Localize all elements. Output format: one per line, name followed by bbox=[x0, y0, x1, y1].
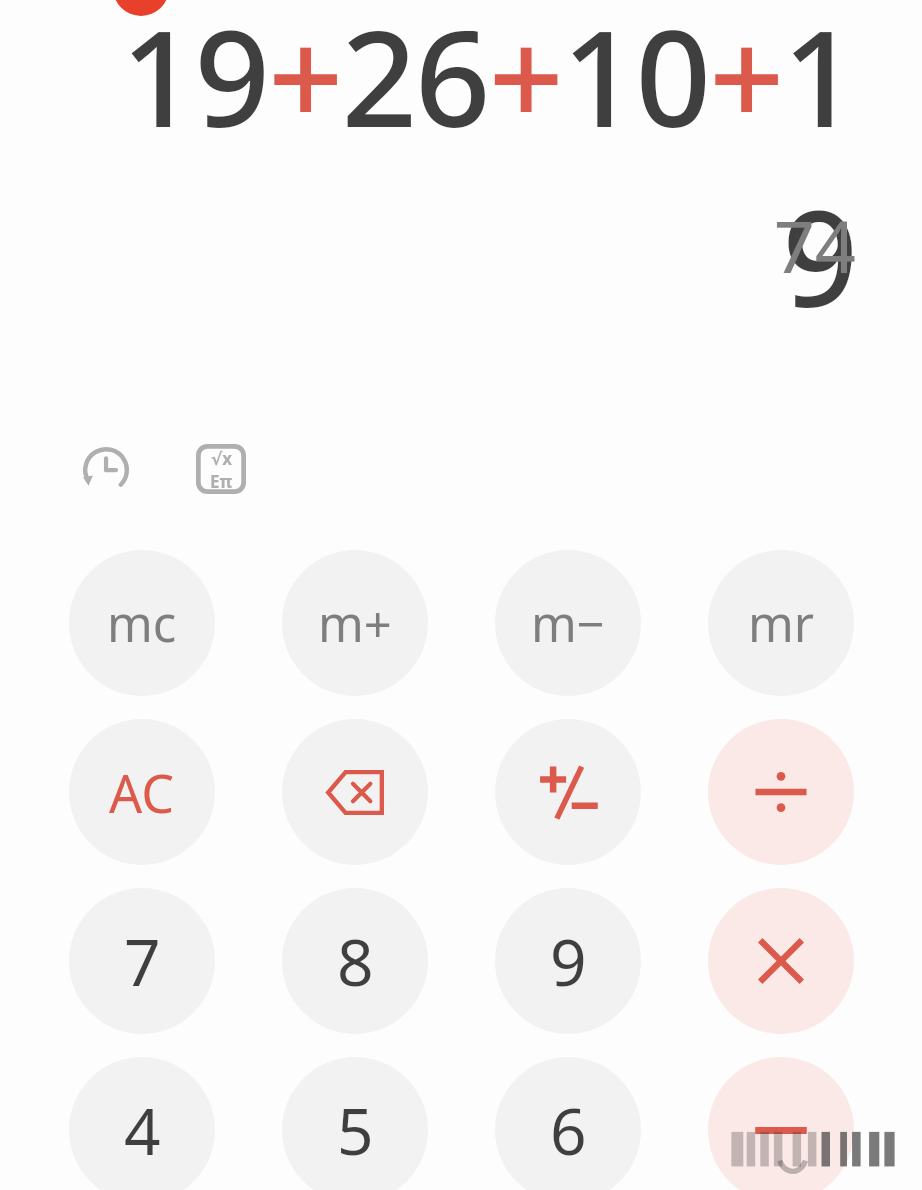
button[interactable]: mr bbox=[708, 550, 854, 696]
button[interactable]: 6 bbox=[495, 1057, 641, 1190]
button[interactable]: Plus minus sign bbox=[495, 719, 641, 865]
button[interactable]: Multiply bbox=[708, 888, 854, 1034]
staticText: m− bbox=[531, 590, 605, 657]
button[interactable]: 5 bbox=[282, 1057, 428, 1190]
staticText: 5 bbox=[337, 1087, 374, 1174]
button[interactable]: Subtract bbox=[708, 1057, 854, 1190]
staticText: mr bbox=[748, 590, 815, 657]
staticText: Eπ bbox=[210, 470, 233, 493]
staticText: 74 bbox=[0, 196, 856, 294]
staticText: 8 bbox=[337, 918, 374, 1005]
staticText: mc bbox=[107, 590, 177, 657]
button[interactable]: Scientific calculator bbox=[188, 436, 254, 502]
staticText: 19+26+10+19 bbox=[70, 0, 856, 346]
button[interactable]: m+ bbox=[282, 550, 428, 696]
button[interactable]: 9 bbox=[495, 888, 641, 1034]
staticText: 7 bbox=[124, 918, 161, 1005]
staticText: AC bbox=[109, 757, 175, 828]
staticText: √x bbox=[211, 447, 233, 470]
button[interactable]: AC bbox=[69, 719, 215, 865]
button[interactable]: 7 bbox=[69, 888, 215, 1034]
staticText: 4 bbox=[124, 1087, 161, 1174]
button[interactable]: 8 bbox=[282, 888, 428, 1034]
button[interactable]: History bbox=[72, 436, 138, 502]
staticText: 6 bbox=[550, 1087, 587, 1174]
button[interactable]: Divide bbox=[708, 719, 854, 865]
button[interactable]: 4 bbox=[69, 1057, 215, 1190]
button[interactable]: Backspace bbox=[282, 719, 428, 865]
button[interactable]: m− bbox=[495, 550, 641, 696]
button[interactable]: mc bbox=[69, 550, 215, 696]
staticText: 9 bbox=[550, 918, 587, 1005]
staticText: m+ bbox=[318, 590, 392, 657]
